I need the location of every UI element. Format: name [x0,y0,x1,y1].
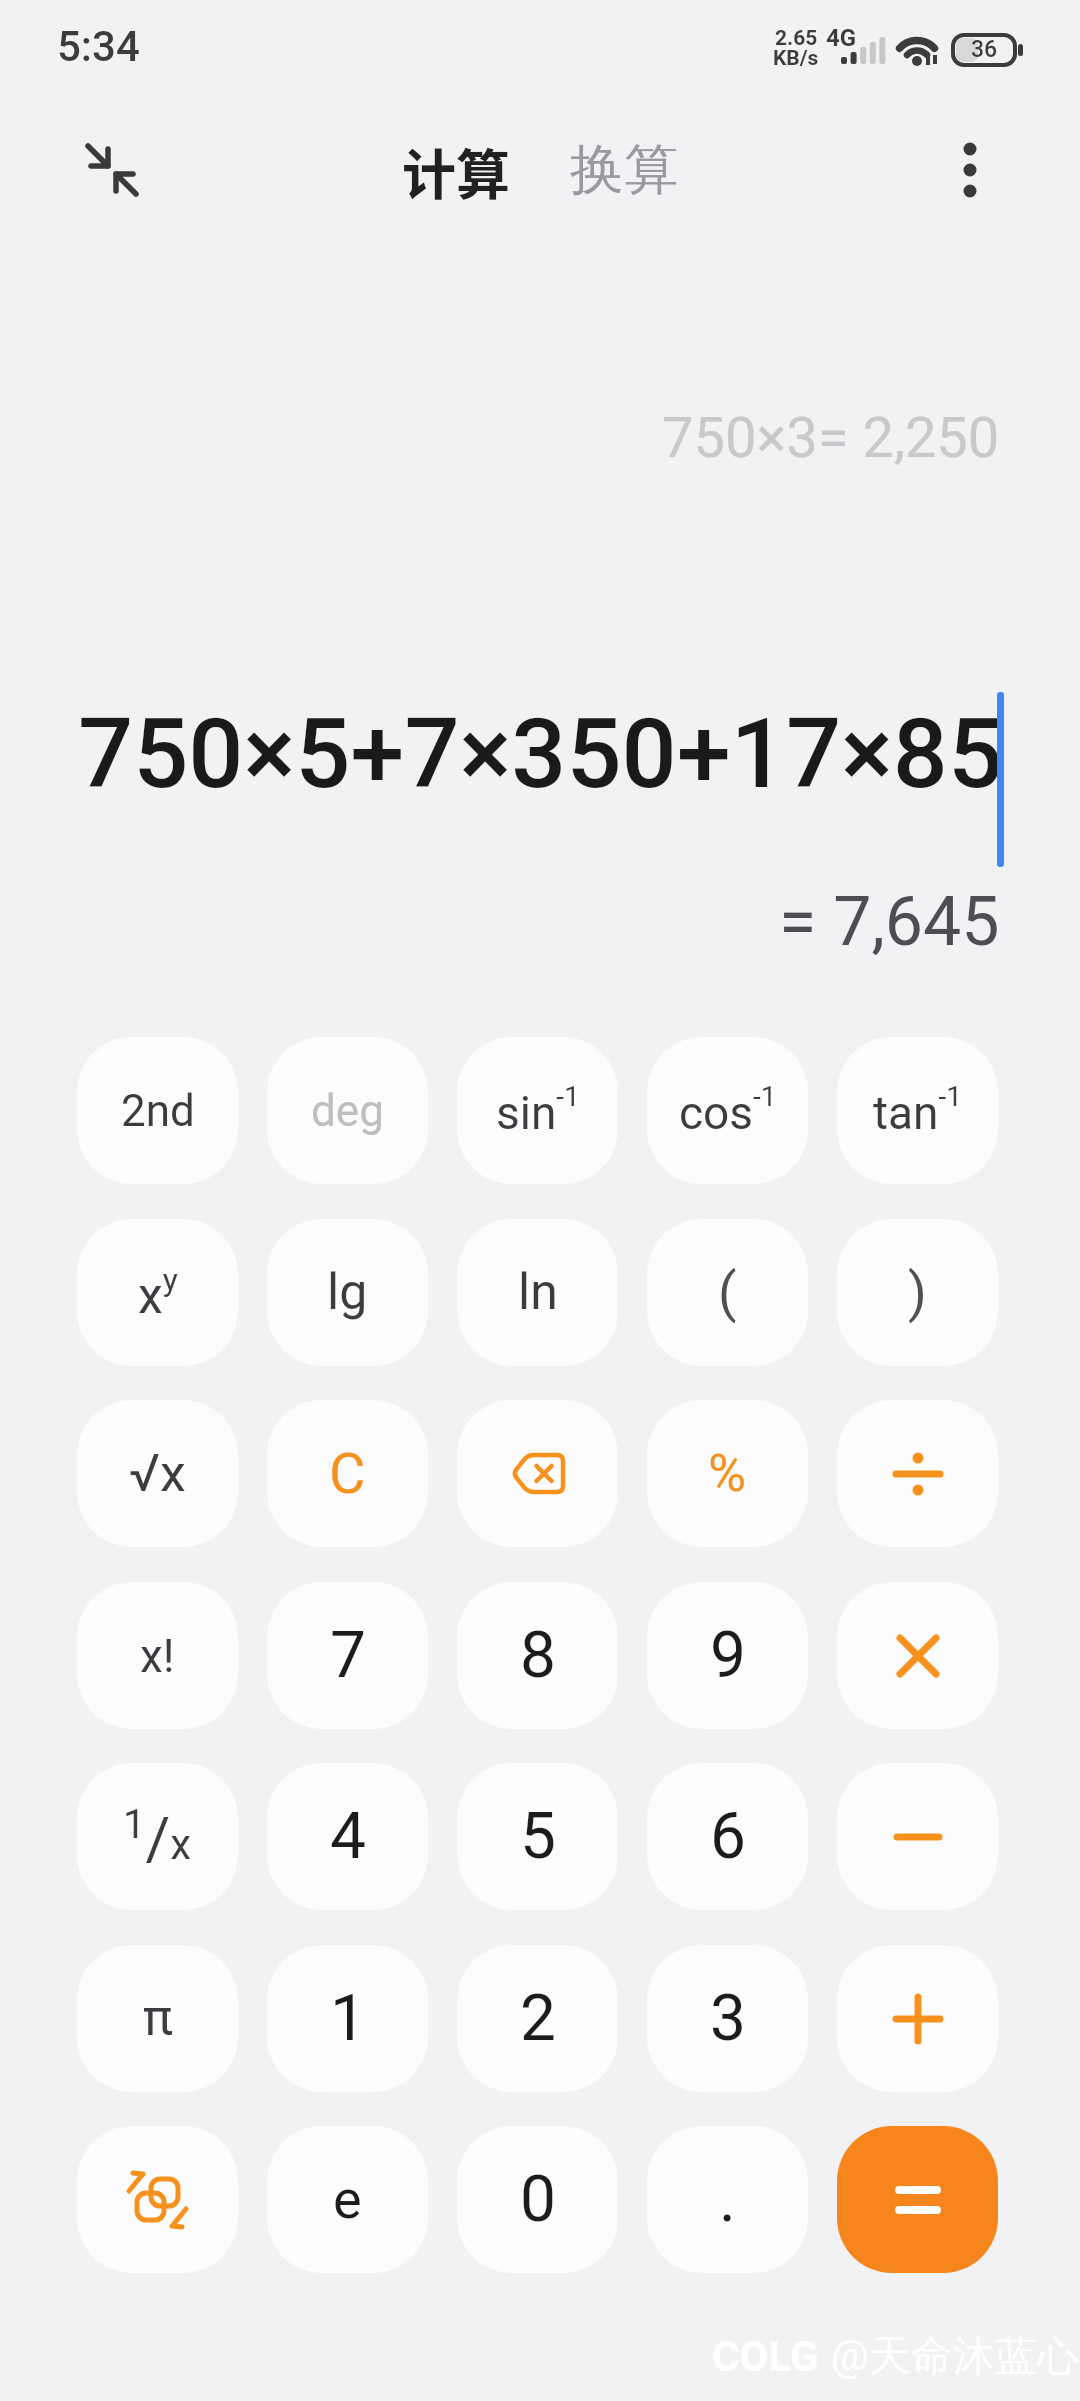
button[interactable]: 计算 [402,132,510,208]
staticText: % [708,1443,747,1504]
button[interactable] [837,1400,998,1547]
button[interactable]: . [647,2126,808,2273]
button[interactable]: e [267,2126,428,2273]
staticText: 3 [710,1981,746,2056]
staticText: . [719,2162,736,2237]
button[interactable]: √x [77,1400,238,1547]
staticText: 5 [520,1799,556,1874]
button[interactable]: 9 [647,1582,808,1729]
button[interactable]: 4 [267,1763,428,1910]
button[interactable]: xy [77,1219,238,1366]
button[interactable] [837,1763,998,1910]
staticText: 750×3= 2,250 [662,405,1000,471]
button[interactable]: 2 [457,1945,618,2092]
button[interactable] [837,1582,998,1729]
button[interactable] [80,138,144,202]
staticText: 1/x [123,1801,192,1873]
button[interactable]: 6 [647,1763,808,1910]
button[interactable]: ) [837,1219,998,1366]
staticText: COLG [712,2332,819,2381]
staticText: deg [311,1085,384,1137]
staticText: = 7,645 [779,882,1000,962]
button[interactable]: ln [457,1219,618,1366]
staticText: xy [138,1261,178,1325]
button[interactable] [837,2126,998,2273]
staticText: e [333,2168,362,2231]
staticText: tan-1 [873,1080,962,1141]
staticText: π [143,1989,173,2048]
button[interactable]: 8 [457,1582,618,1729]
button[interactable] [837,1945,998,2092]
staticText: 7 [330,1618,366,1693]
button[interactable]: lg [267,1219,428,1366]
button[interactable]: 1 [267,1945,428,2092]
button[interactable]: cos-1 [647,1037,808,1184]
staticText: 5:34 [57,22,140,71]
button[interactable]: 3 [647,1945,808,2092]
button[interactable]: 7 [267,1582,428,1729]
button[interactable]: 1/x [77,1763,238,1910]
staticText: 36 [971,36,998,63]
staticText: KB/s [773,46,819,71]
staticText: 换算 [570,136,678,204]
button[interactable]: % [647,1400,808,1547]
staticText: 4G [826,24,857,52]
staticText: 9 [710,1618,746,1693]
button[interactable]: x! [77,1582,238,1729]
staticText: C [329,1441,366,1507]
button[interactable]: ( [647,1219,808,1366]
staticText: 1 [330,1981,366,2056]
staticText: 8 [520,1618,556,1693]
button[interactable] [940,138,1000,202]
staticText: 0 [520,2162,556,2237]
button[interactable]: sin-1 [457,1037,618,1184]
button[interactable]: C [267,1400,428,1547]
staticText: √x [129,1443,186,1504]
staticText: @天命沐蓝心 [831,2330,1079,2383]
button[interactable] [457,1400,618,1547]
staticText: sin-1 [496,1080,580,1141]
staticText: cos-1 [679,1080,777,1141]
staticText: lg [327,1263,368,1322]
button[interactable]: 换算 [570,136,678,204]
button[interactable]: 5 [457,1763,618,1910]
staticText: 2.65 [775,26,818,51]
staticText: x! [140,1629,175,1683]
staticText: 2nd [121,1085,195,1137]
staticText: 2 [520,1981,556,2056]
staticText: 4 [330,1799,366,1874]
staticText: 计算 [402,132,510,208]
button[interactable]: deg [267,1037,428,1184]
staticText: ( [718,1261,737,1324]
staticText: ln [518,1263,558,1322]
staticText: ) [908,1261,927,1324]
staticText: 6 [710,1799,746,1874]
button[interactable]: 2nd [77,1037,238,1184]
button[interactable] [77,2126,238,2273]
button[interactable]: tan-1 [837,1037,998,1184]
button[interactable]: 0 [457,2126,618,2273]
staticText: 750×5+7×350+17×85 [78,697,1004,811]
button[interactable]: π [77,1945,238,2092]
